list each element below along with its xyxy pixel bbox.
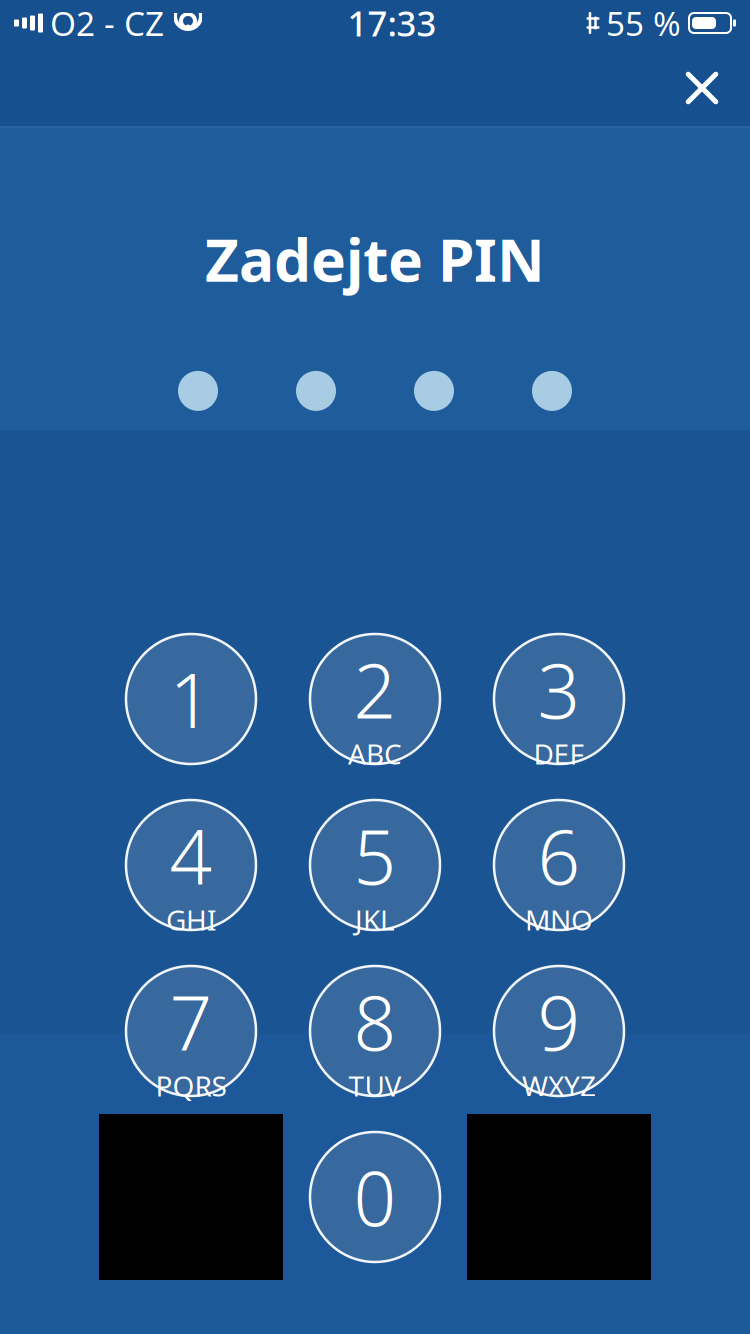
staticText: TUV xyxy=(348,1067,401,1104)
button[interactable]: 3 xyxy=(467,616,651,782)
staticText: GHI xyxy=(166,901,216,938)
button[interactable]: 5 xyxy=(283,782,467,948)
button[interactable]: 9 xyxy=(467,948,651,1114)
staticText: 3 xyxy=(537,640,580,739)
staticText: 6 xyxy=(537,806,580,905)
button[interactable]: 6 xyxy=(467,782,651,948)
staticText: JKL xyxy=(355,901,395,938)
button[interactable]: 0 xyxy=(283,1114,467,1280)
staticText: ABC xyxy=(348,735,402,772)
button[interactable]: 2 xyxy=(283,616,467,782)
button[interactable]: 7 xyxy=(99,948,283,1114)
staticText: DEF xyxy=(533,735,584,772)
button[interactable]: 1 xyxy=(99,616,283,782)
staticText: 4 xyxy=(169,806,212,905)
staticText: MNO xyxy=(525,901,593,938)
button[interactable]: Close xyxy=(676,58,750,114)
staticText: 55 % xyxy=(606,1,681,45)
staticText: 1 xyxy=(169,649,212,749)
staticText: 8 xyxy=(353,972,396,1071)
staticText: Zadejte PIN xyxy=(205,220,545,298)
staticText: PQRS xyxy=(155,1067,226,1104)
staticText: 2 xyxy=(353,640,396,739)
staticText: 7 xyxy=(169,972,212,1071)
staticText: 17:33 xyxy=(347,0,436,46)
staticText: 0 xyxy=(353,1147,396,1247)
staticText: O2 - CZ xyxy=(50,1,164,45)
staticText: 5 xyxy=(353,806,396,905)
staticText: WXYZ xyxy=(522,1067,596,1104)
staticText: 9 xyxy=(537,972,580,1071)
button[interactable]: 8 xyxy=(283,948,467,1114)
button[interactable]: 4 xyxy=(99,782,283,948)
